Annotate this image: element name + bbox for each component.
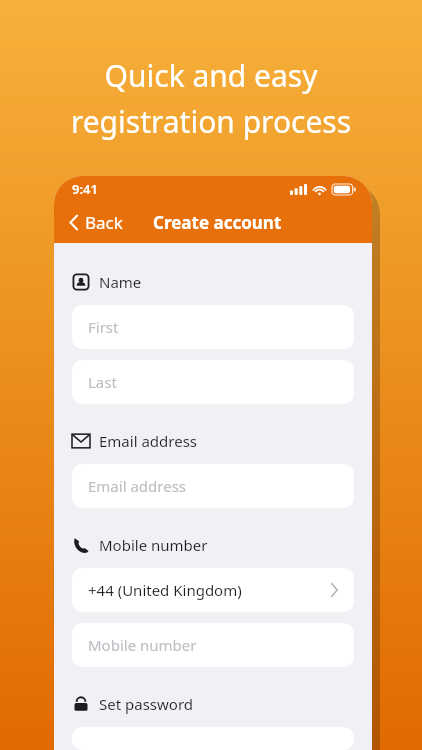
- staticText: Create account: [153, 211, 282, 234]
- staticText: Email address: [99, 431, 198, 451]
- button[interactable]: Last: [72, 360, 354, 404]
- staticText: +44 (United Kingdom): [88, 580, 242, 600]
- button[interactable]: Mobile number: [72, 623, 354, 667]
- staticText: Back: [85, 211, 123, 234]
- button[interactable]: +44 (United Kingdom): [72, 568, 354, 612]
- staticText: Name: [99, 272, 142, 292]
- staticText: 9:41: [72, 180, 98, 198]
- button[interactable]: Email address: [72, 464, 354, 508]
- staticText: Email address: [88, 476, 187, 496]
- staticText: Set password: [99, 694, 194, 714]
- staticText: Mobile number: [88, 635, 197, 655]
- staticText: registration process: [0, 101, 422, 142]
- button[interactable]: First: [72, 305, 354, 349]
- button[interactable]: Back: [66, 207, 127, 238]
- staticText: Last: [88, 372, 117, 392]
- staticText: Mobile number: [99, 535, 208, 555]
- staticText: First: [88, 317, 119, 337]
- staticText: Quick and easy: [0, 55, 422, 96]
